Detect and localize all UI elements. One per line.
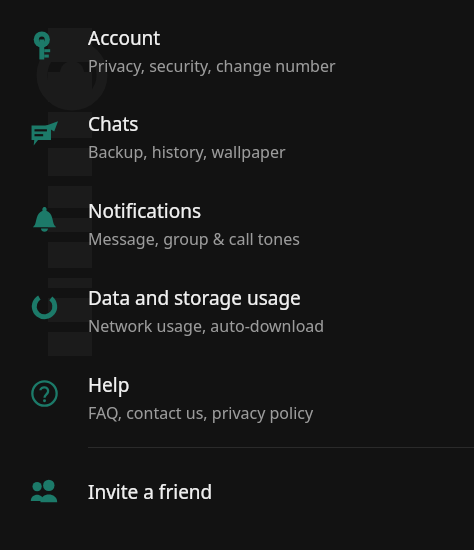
button[interactable]: Data and storage usage (0, 280, 474, 350)
other: Notifications (31, 206, 58, 233)
staticText: Backup, history, wallpaper (88, 141, 286, 163)
staticText: Help (88, 372, 130, 398)
staticText: Message, group & call tones (88, 228, 300, 250)
other: Account (31, 33, 58, 60)
button[interactable]: Notifications (0, 193, 474, 263)
staticText: Network usage, auto-download (88, 315, 325, 337)
other: Help (31, 380, 58, 407)
button[interactable]: Account (0, 20, 474, 90)
other: Data and storage usage (31, 293, 58, 320)
staticText: Notifications (88, 198, 202, 224)
staticText: Privacy, security, change number (88, 55, 336, 77)
staticText: Chats (88, 111, 139, 137)
other: Chats (31, 119, 58, 146)
other: Invite a friend (29, 477, 59, 507)
staticText: Invite a friend (88, 479, 213, 505)
button[interactable]: Chats (0, 106, 474, 176)
staticText: Data and storage usage (88, 285, 301, 311)
staticText: Account (88, 25, 161, 51)
staticText: FAQ, contact us, privacy policy (88, 402, 314, 424)
button[interactable]: Help (0, 367, 474, 437)
button[interactable]: Invite a friend (0, 462, 474, 522)
